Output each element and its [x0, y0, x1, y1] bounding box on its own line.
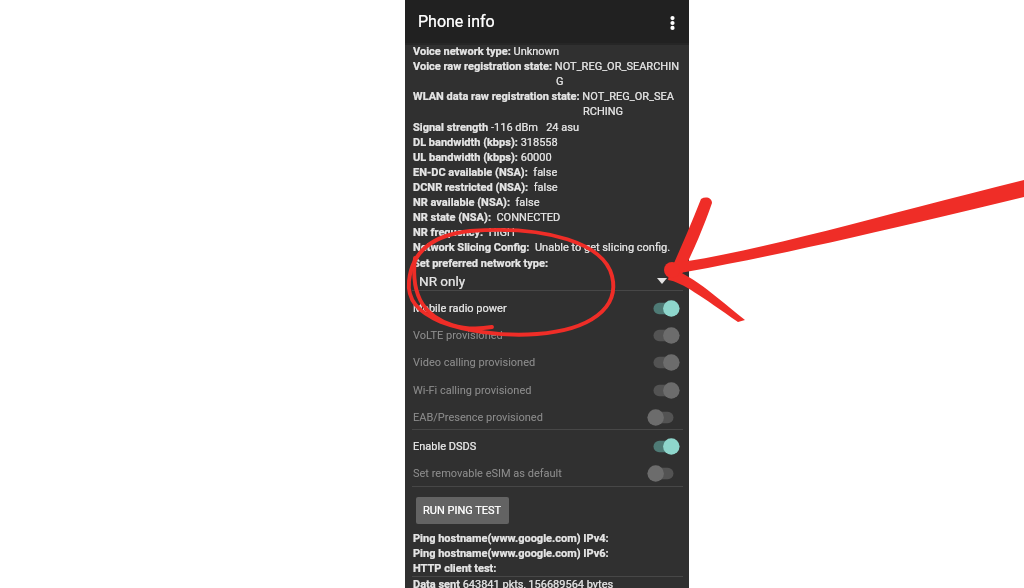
staticText: NR frequency: HIGH	[413, 226, 515, 239]
staticText: HTTP client test:	[413, 562, 497, 575]
staticText: Data sent 643841 pkts, 156689564 bytes	[413, 578, 614, 588]
staticText: Video calling provisioned	[413, 356, 536, 369]
staticText: EN-DC available (NSA): false	[413, 166, 558, 179]
staticText: UL bandwidth (kbps): 60000	[413, 151, 552, 164]
staticText: NR state (NSA): CONNECTED	[413, 211, 561, 224]
staticText: Voice network type: Unknown	[413, 45, 559, 58]
button[interactable]: Mobile radio power	[405, 295, 689, 322]
staticText: RCHING	[583, 105, 624, 118]
button[interactable]: NR only	[405, 269, 689, 292]
staticText: Enable DSDS	[413, 440, 477, 453]
button[interactable]: RUN PING TEST	[416, 497, 509, 524]
button[interactable]: More options	[649, 2, 689, 42]
staticText: Network Slicing Config: Unable to get sl…	[413, 241, 671, 254]
staticText: Wi-Fi calling provisioned	[413, 384, 532, 397]
staticText: EAB/Presence provisioned	[413, 411, 543, 424]
staticText: NR available (NSA): false	[413, 196, 540, 209]
button[interactable]: VoLTE provisioned	[405, 322, 689, 349]
button[interactable]: Video calling provisioned	[405, 349, 689, 376]
staticText: Set removable eSIM as default	[413, 467, 562, 480]
staticText: Voice raw registration state: NOT_REG_OR…	[413, 60, 679, 73]
staticText: Phone info	[418, 12, 495, 31]
button[interactable]: Wi-Fi calling provisioned	[405, 377, 689, 404]
staticText: NR only	[419, 273, 466, 289]
staticText: Mobile radio power	[413, 302, 507, 315]
button[interactable]: Set removable eSIM as default	[405, 460, 689, 487]
staticText: DCNR restricted (NSA): false	[413, 181, 558, 194]
staticText: VoLTE provisioned	[413, 329, 503, 342]
staticText: RUN PING TEST	[423, 504, 502, 517]
staticText: Signal strength -116 dBm 24 asu	[413, 121, 579, 134]
button[interactable]: EAB/Presence provisioned	[405, 404, 689, 431]
staticText: WLAN data raw registration state: NOT_RE…	[413, 90, 674, 103]
button[interactable]: Enable DSDS	[405, 433, 689, 460]
staticText: G	[556, 75, 564, 88]
staticText: DL bandwidth (kbps): 318558	[413, 136, 558, 149]
staticText: Set preferred network type:	[413, 257, 549, 270]
staticText: Ping hostname(www.google.com) IPv4:	[413, 532, 609, 545]
staticText: Ping hostname(www.google.com) IPv6:	[413, 547, 609, 560]
